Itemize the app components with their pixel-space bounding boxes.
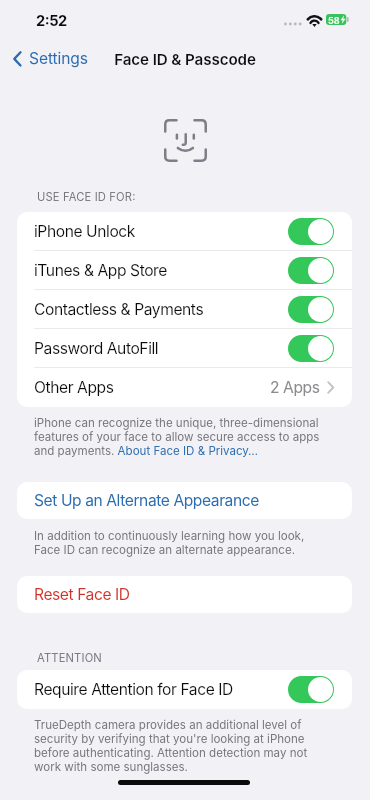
button[interactable]: Toggle bbox=[288, 218, 334, 245]
staticText: iTunes & App Store bbox=[34, 261, 167, 280]
button[interactable]: Toggle bbox=[288, 335, 334, 362]
button[interactable]: Other Apps bbox=[17, 368, 352, 407]
staticText: iPhone Unlock bbox=[34, 222, 135, 241]
staticText: USE FACE ID FOR: bbox=[37, 190, 136, 204]
staticText: In addition to continuously learning how… bbox=[34, 529, 323, 557]
staticText: Password AutoFill bbox=[34, 339, 159, 358]
staticText: 2:52 bbox=[36, 12, 67, 30]
button[interactable]: Contactless & Payments bbox=[17, 290, 352, 329]
staticText: ATTENTION bbox=[37, 651, 102, 665]
button[interactable]: Require Attention for Face ID bbox=[17, 670, 352, 709]
staticText: TrueDepth camera provides an additional … bbox=[34, 718, 320, 774]
button[interactable]: Password AutoFill bbox=[17, 329, 352, 368]
button[interactable]: Toggle bbox=[288, 296, 334, 323]
button[interactable]: Settings bbox=[9, 45, 87, 72]
button[interactable]: Toggle bbox=[288, 676, 334, 703]
staticText: Settings bbox=[29, 49, 88, 68]
staticText: Require Attention for Face ID bbox=[34, 680, 233, 699]
staticText: 2 Apps bbox=[270, 378, 320, 397]
button[interactable]: iTunes & App Store bbox=[17, 251, 352, 290]
staticText: Face ID & Passcode bbox=[0, 50, 370, 68]
staticText: iPhone can recognize the unique, three-d… bbox=[34, 416, 320, 458]
staticText: Set Up an Alternate Appearance bbox=[34, 491, 259, 510]
staticText: Reset Face ID bbox=[34, 585, 130, 604]
staticText: Other Apps bbox=[34, 378, 114, 397]
button[interactable]: Reset Face ID bbox=[17, 576, 352, 613]
button[interactable]: Set Up an Alternate Appearance bbox=[17, 482, 352, 519]
button[interactable]: Toggle bbox=[288, 257, 334, 284]
staticText: Contactless & Payments bbox=[34, 300, 204, 319]
staticText: 58 bbox=[328, 15, 340, 26]
button[interactable]: iPhone Unlock bbox=[17, 212, 352, 251]
